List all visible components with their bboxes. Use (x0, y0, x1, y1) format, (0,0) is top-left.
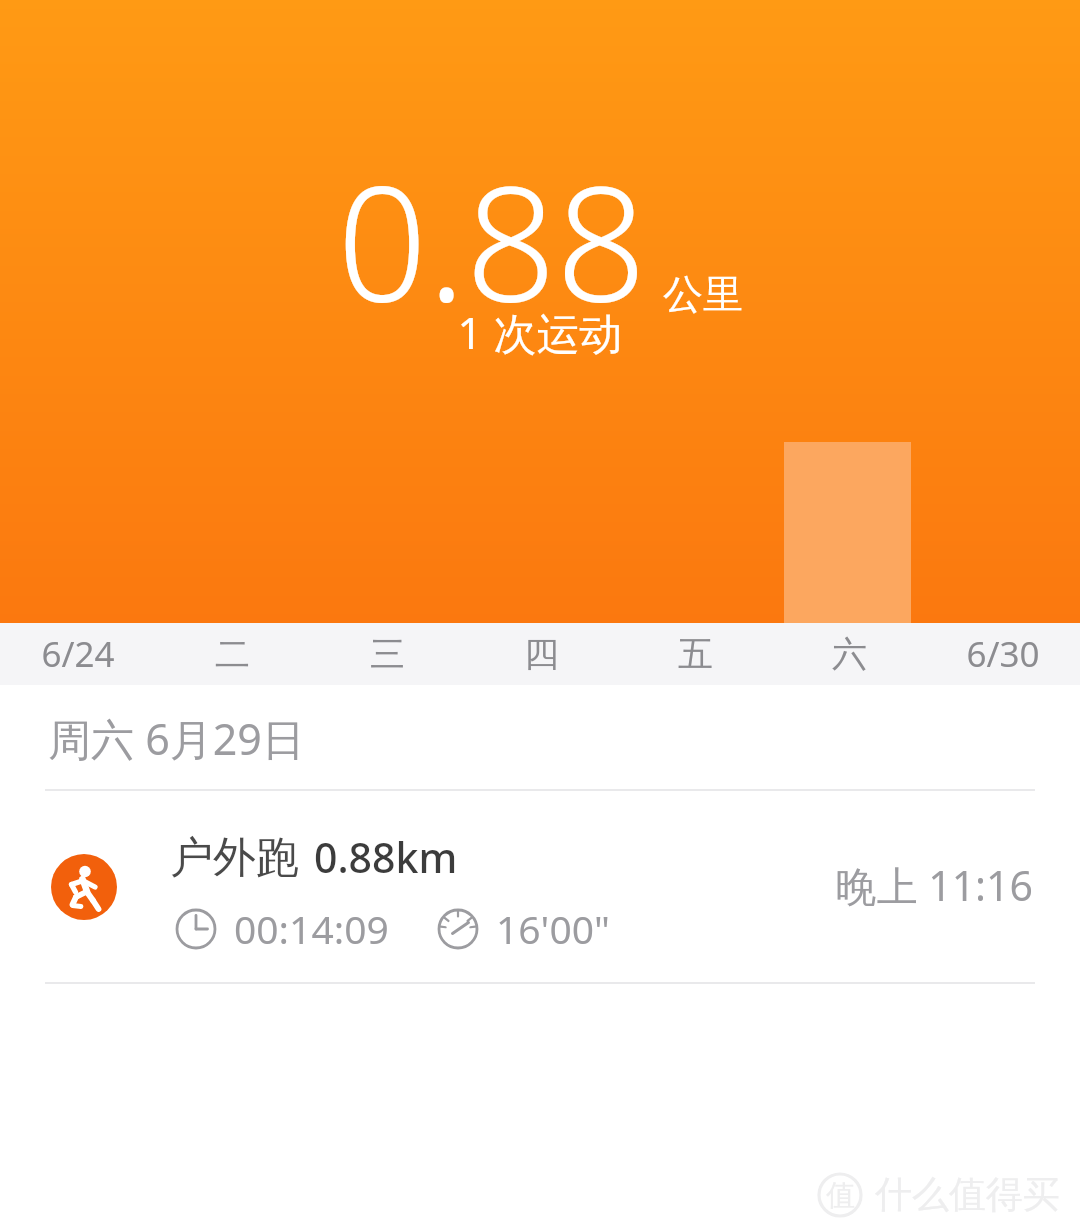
staticText: 0.88 (337, 132, 647, 347)
staticText: 00:14:09 (234, 902, 389, 955)
button[interactable]: 五 (618, 623, 772, 685)
staticText: 四 (524, 632, 559, 676)
button[interactable]: 四 (464, 623, 618, 685)
staticText: 六 (832, 632, 867, 676)
staticText: 6/24 (41, 630, 115, 678)
staticText: 晚上 11:16 (835, 857, 1033, 913)
staticText: 1 次运动 (0, 303, 1080, 362)
button[interactable]: 6/30 (926, 623, 1080, 685)
staticText: 户外跑 (170, 831, 299, 885)
staticText: 五 (678, 632, 713, 676)
button[interactable]: Outdoor run activity (0, 791, 1080, 982)
staticText: 三 (370, 632, 405, 676)
staticText: 16'00" (496, 902, 610, 955)
staticText: 0.88km (314, 829, 458, 885)
staticText: 公里 (663, 269, 743, 319)
staticText: 6/30 (966, 630, 1040, 678)
other: Outdoor run activity (51, 854, 117, 920)
staticText: 值 (826, 1177, 855, 1214)
staticText: 周六 6月29日 (48, 709, 305, 768)
staticText: 什么值得买 (875, 1171, 1060, 1218)
button[interactable]: 6/24 (0, 623, 155, 685)
button[interactable]: 二 (155, 623, 310, 685)
button[interactable]: 三 (310, 623, 464, 685)
button[interactable]: 六 (772, 623, 926, 685)
staticText: 二 (215, 632, 250, 676)
